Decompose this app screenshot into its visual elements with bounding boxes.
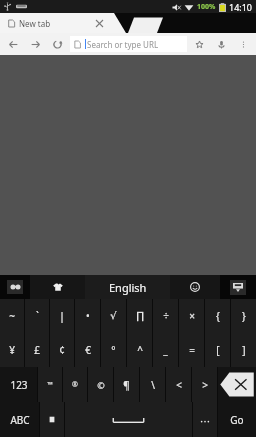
button[interactable]: 123: [0, 367, 37, 402]
button[interactable]: More options: [232, 33, 254, 55]
button[interactable]: Backspace: [218, 367, 256, 402]
button[interactable]: Forward: [24, 33, 46, 55]
button[interactable]: ABC: [0, 402, 39, 437]
button[interactable]: ¶: [114, 367, 139, 402]
button[interactable]: ^: [127, 333, 152, 367]
button[interactable]: Voice search: [210, 33, 232, 55]
button[interactable]: Back: [2, 33, 24, 55]
button[interactable]: <: [166, 367, 191, 402]
staticText: €: [85, 343, 91, 357]
staticText: 14:10: [229, 1, 253, 13]
staticText: ®: [72, 380, 78, 390]
staticText: °: [111, 343, 116, 357]
button[interactable]: Search or type URL: [74, 36, 183, 52]
button[interactable]: °: [101, 333, 126, 367]
button[interactable]: >: [192, 367, 217, 402]
staticText: Go: [230, 413, 244, 427]
staticText: `: [36, 309, 39, 323]
button[interactable]: Close tab: [90, 14, 108, 32]
staticText: English: [109, 280, 147, 295]
button[interactable]: ¢: [50, 333, 74, 367]
staticText: √: [110, 310, 117, 322]
button[interactable]: ÷: [153, 299, 178, 333]
staticText: ¢: [59, 343, 65, 357]
staticText: ÷: [163, 309, 169, 323]
button[interactable]: √: [101, 299, 126, 333]
button[interactable]: Hide keyboard: [220, 275, 256, 299]
button[interactable]: ×: [179, 299, 204, 333]
button[interactable]: {: [205, 299, 230, 333]
button[interactable]: Bookmark: [188, 33, 210, 55]
staticText: }: [242, 309, 246, 323]
button[interactable]: More symbols: [193, 402, 217, 437]
button[interactable]: ]: [231, 333, 256, 367]
button[interactable]: £: [25, 333, 49, 367]
staticText: 123: [10, 378, 28, 392]
staticText: |: [59, 309, 65, 323]
button[interactable]: Theme: [30, 275, 85, 299]
staticText: ©: [97, 379, 105, 391]
staticText: <: [176, 378, 182, 392]
staticText: ABC: [10, 413, 30, 427]
button[interactable]: ∏: [127, 299, 152, 333]
button[interactable]: New tab: [8, 13, 112, 33]
button[interactable]: Space: [65, 402, 192, 437]
staticText: [: [216, 343, 220, 357]
button[interactable]: ¥: [0, 333, 24, 367]
button[interactable]: |: [50, 299, 74, 333]
button[interactable]: _: [153, 333, 178, 367]
staticText: ¥: [9, 343, 15, 357]
staticText: ~: [9, 309, 15, 323]
staticText: ×: [189, 309, 195, 323]
staticText: ™: [47, 380, 53, 390]
button[interactable]: ©: [88, 367, 113, 402]
button[interactable]: •: [75, 299, 100, 333]
staticText: •: [86, 309, 90, 323]
staticText: {: [216, 309, 220, 323]
staticText: New tab: [19, 18, 51, 29]
button[interactable]: Reload: [46, 33, 68, 55]
button[interactable]: ™: [38, 367, 62, 402]
staticText: ¶: [123, 378, 130, 392]
button[interactable]: =: [179, 333, 204, 367]
staticText: ^: [137, 343, 143, 357]
button[interactable]: €: [75, 333, 100, 367]
button[interactable]: Go: [218, 402, 256, 437]
staticText: 100%: [197, 2, 216, 12]
staticText: \: [151, 378, 155, 392]
staticText: =: [189, 343, 195, 357]
staticText: Search or type URL: [87, 39, 159, 50]
button[interactable]: `: [25, 299, 49, 333]
button[interactable]: \: [140, 367, 165, 402]
button[interactable]: Emoji: [170, 275, 220, 299]
button[interactable]: Settings: [40, 402, 64, 437]
staticText: ∏: [136, 310, 144, 322]
button[interactable]: [: [205, 333, 230, 367]
staticText: _: [163, 343, 168, 357]
staticText: ]: [242, 343, 246, 357]
button[interactable]: English: [85, 275, 170, 299]
button[interactable]: Incognito: [0, 275, 30, 299]
button[interactable]: ~: [0, 299, 24, 333]
staticText: £: [34, 343, 40, 357]
button[interactable]: ®: [63, 367, 87, 402]
button[interactable]: }: [231, 299, 256, 333]
staticText: >: [202, 378, 208, 392]
